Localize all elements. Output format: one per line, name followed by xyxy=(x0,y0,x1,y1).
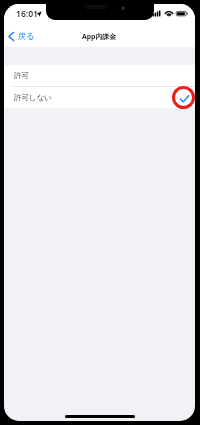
other: Selected xyxy=(180,95,189,103)
staticText: App内課金 xyxy=(82,32,117,41)
staticText: 許可 xyxy=(14,71,29,80)
staticText: 戻る xyxy=(18,31,35,41)
button[interactable]: 許可しない xyxy=(4,87,195,108)
staticText: 許可しない xyxy=(14,93,53,102)
button[interactable]: 戻る xyxy=(4,25,41,47)
staticText: 16:01 xyxy=(16,8,39,20)
button[interactable]: 許可 xyxy=(4,65,195,86)
